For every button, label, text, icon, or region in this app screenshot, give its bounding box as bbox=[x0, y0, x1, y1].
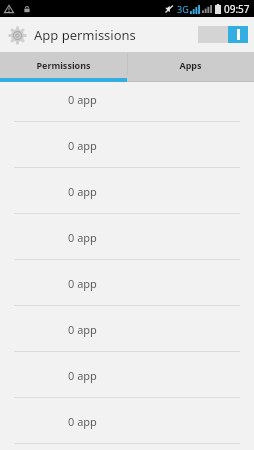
staticText: 0 app bbox=[68, 414, 97, 429]
button[interactable]: 0 app bbox=[0, 404, 254, 450]
button[interactable]: 0 app bbox=[0, 220, 254, 266]
button[interactable]: 0 app bbox=[0, 312, 254, 358]
staticText: Permissions bbox=[36, 59, 91, 71]
button[interactable]: Permissions bbox=[0, 52, 127, 82]
button[interactable]: 0 app bbox=[0, 174, 254, 220]
staticText: Apps bbox=[179, 59, 202, 71]
staticText: 0 app bbox=[68, 138, 97, 153]
staticText: 3G bbox=[177, 3, 189, 15]
button[interactable]: Apps bbox=[127, 52, 254, 82]
staticText: 09:57 bbox=[224, 2, 250, 16]
button[interactable]: Toggle all permissions bbox=[198, 26, 248, 43]
button[interactable]: 0 app bbox=[0, 358, 254, 404]
staticText: 0 app bbox=[68, 184, 97, 199]
button[interactable]: 0 app bbox=[0, 128, 254, 174]
button[interactable]: 0 app bbox=[0, 266, 254, 312]
staticText: 0 app bbox=[68, 92, 97, 107]
staticText: 0 app bbox=[68, 230, 97, 245]
button[interactable] bbox=[6, 24, 28, 46]
staticText: 0 app bbox=[68, 368, 97, 383]
button[interactable]: 0 app bbox=[0, 82, 254, 128]
staticText: App permissions bbox=[34, 26, 136, 44]
staticText: 0 app bbox=[68, 276, 97, 291]
staticText: 0 app bbox=[68, 322, 97, 337]
